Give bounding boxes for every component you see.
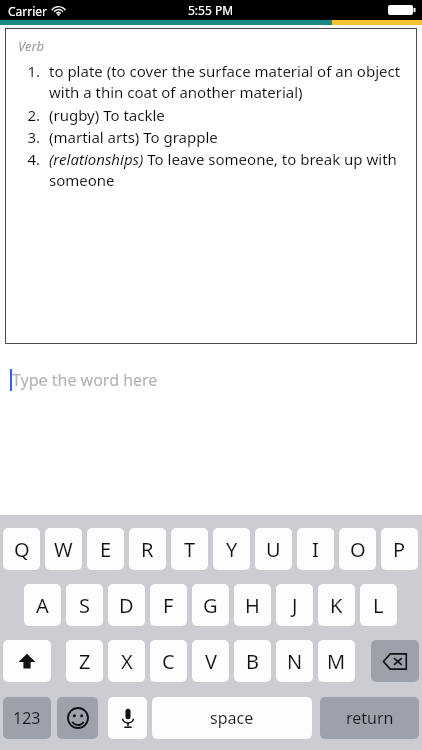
button[interactable]: M: [318, 640, 355, 682]
button[interactable]: 123: [3, 697, 51, 739]
button[interactable]: I: [297, 528, 334, 570]
button[interactable]: return: [320, 697, 419, 739]
button[interactable]: L: [360, 584, 397, 626]
button[interactable]: X: [108, 640, 145, 682]
button[interactable]: Z: [66, 640, 103, 682]
staticText: E: [100, 536, 112, 563]
staticText: 2.: [18, 105, 40, 125]
button[interactable]: W: [45, 528, 82, 570]
staticText: return: [346, 707, 394, 729]
staticText: W: [54, 536, 73, 563]
staticText: Y: [226, 536, 238, 563]
button[interactable]: N: [276, 640, 313, 682]
staticText: (martial arts) To grapple: [49, 127, 218, 147]
staticText: N: [287, 648, 303, 675]
staticText: (relationships) To leave someone, to bre…: [49, 149, 411, 191]
button[interactable]: Dictation: [108, 697, 147, 739]
button[interactable]: Emoji: [57, 697, 98, 739]
staticText: 123: [13, 707, 41, 729]
staticText: I: [312, 536, 319, 563]
staticText: T: [184, 536, 196, 563]
button[interactable]: Q: [3, 528, 40, 570]
button[interactable]: A: [24, 584, 61, 626]
staticText: R: [141, 536, 154, 563]
staticText: 1.: [18, 61, 40, 81]
staticText: (rugby) To tackle: [49, 105, 165, 125]
staticText: 4.: [18, 149, 40, 169]
button[interactable]: Y: [213, 528, 250, 570]
staticText: J: [292, 592, 298, 619]
button[interactable]: S: [66, 584, 103, 626]
staticText: 3.: [18, 127, 40, 147]
staticText: K: [330, 592, 343, 619]
button[interactable]: V: [192, 640, 229, 682]
staticText: D: [119, 592, 134, 619]
staticText: S: [79, 592, 90, 619]
button[interactable]: E: [87, 528, 124, 570]
staticText: M: [327, 648, 346, 675]
staticText: Z: [79, 648, 91, 675]
button[interactable]: Shift: [3, 640, 51, 682]
staticText: U: [266, 536, 281, 563]
button[interactable]: O: [339, 528, 376, 570]
button[interactable]: P: [381, 528, 418, 570]
staticText: H: [245, 592, 260, 619]
staticText: Carrier: [8, 3, 48, 19]
staticText: space: [210, 707, 254, 729]
button[interactable]: H: [234, 584, 271, 626]
staticText: P: [393, 536, 406, 563]
button[interactable]: F: [150, 584, 187, 626]
button[interactable]: D: [108, 584, 145, 626]
button[interactable]: B: [234, 640, 271, 682]
staticText: L: [373, 592, 384, 619]
button[interactable]: K: [318, 584, 355, 626]
button[interactable]: C: [150, 640, 187, 682]
staticText: V: [205, 648, 217, 675]
button[interactable]: Backspace: [371, 640, 419, 682]
staticText: C: [162, 648, 175, 675]
staticText: to plate (to cover the surface material …: [49, 61, 411, 103]
staticText: Type the word here: [12, 369, 158, 391]
button[interactable]: space: [152, 697, 312, 739]
button[interactable]: Type the word here: [0, 366, 422, 394]
button[interactable]: J: [276, 584, 313, 626]
staticText: O: [350, 536, 366, 563]
staticText: 5:55 PM: [188, 2, 234, 18]
staticText: Verb: [18, 37, 45, 55]
staticText: Q: [14, 536, 30, 563]
staticText: F: [163, 592, 174, 619]
staticText: A: [36, 592, 49, 619]
button[interactable]: G: [192, 584, 229, 626]
button[interactable]: T: [171, 528, 208, 570]
button[interactable]: R: [129, 528, 166, 570]
staticText: G: [203, 592, 218, 619]
staticText: X: [121, 648, 133, 675]
staticText: B: [246, 648, 259, 675]
button[interactable]: U: [255, 528, 292, 570]
